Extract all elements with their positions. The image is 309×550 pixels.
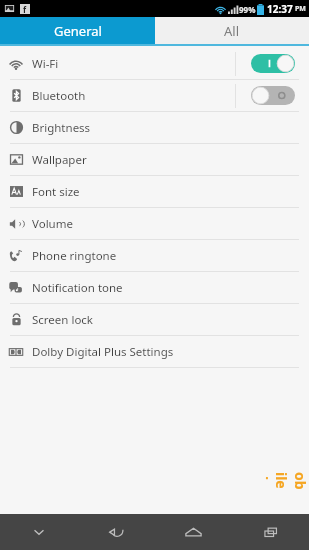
button[interactable]: Off [251, 86, 295, 105]
staticText: 99% [239, 4, 256, 15]
staticText: Volume [32, 216, 73, 232]
staticText: Brightness [32, 120, 91, 136]
button[interactable]: Wallpaper [0, 144, 309, 175]
button[interactable]: Hide keyboard [0, 514, 78, 550]
staticText: Font size [32, 184, 80, 200]
staticText: Wi-Fi [32, 56, 59, 72]
staticText: mobile.ir [265, 472, 309, 492]
button[interactable]: Bluetooth [0, 80, 309, 111]
staticText: General [54, 22, 102, 40]
button[interactable]: Font size [0, 176, 309, 207]
staticText: Phone ringtone [32, 248, 117, 264]
button[interactable]: Screen lock [0, 304, 309, 335]
staticText: Screen lock [32, 312, 94, 328]
button[interactable]: Brightness [0, 112, 309, 143]
button[interactable]: Recent apps [232, 514, 309, 550]
button[interactable]: Volume [0, 208, 309, 239]
staticText: Dolby Digital Plus Settings [32, 344, 174, 360]
button[interactable]: Dolby Digital Plus Settings [0, 336, 309, 367]
button[interactable]: On [251, 54, 295, 73]
staticText: Bluetooth [32, 88, 86, 104]
staticText: f [23, 4, 27, 14]
staticText: Wallpaper [32, 152, 87, 168]
staticText: PM [295, 4, 306, 14]
staticText: Notification tone [32, 280, 123, 296]
staticText: 12:37 [267, 2, 293, 16]
button[interactable]: Notification tone [0, 272, 309, 303]
button[interactable]: All [155, 17, 309, 44]
button[interactable]: Home [155, 514, 232, 550]
button[interactable]: Wi-Fi [0, 48, 309, 79]
button[interactable]: General [0, 17, 155, 44]
button[interactable]: Phone ringtone [0, 240, 309, 271]
staticText: All [224, 22, 240, 40]
button[interactable]: Back [78, 514, 155, 550]
